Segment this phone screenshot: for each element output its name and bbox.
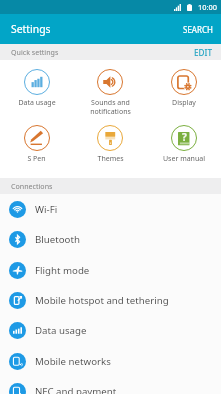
staticText: User manual bbox=[163, 154, 205, 164]
staticText: Sounds and notifications bbox=[90, 98, 131, 116]
staticText: Bluetooth bbox=[35, 233, 80, 246]
staticText: EDIT bbox=[194, 47, 213, 57]
staticText: SEARCH bbox=[183, 24, 213, 35]
button[interactable]: Display bbox=[147, 60, 221, 116]
button[interactable]: Bluetooth bbox=[0, 224, 221, 255]
button[interactable]: Mobile networks bbox=[0, 346, 221, 376]
staticText: Themes bbox=[97, 154, 124, 164]
staticText: Mobile networks bbox=[35, 355, 111, 368]
staticText: Display bbox=[172, 98, 196, 108]
button[interactable]: ? bbox=[147, 116, 221, 172]
staticText: Quick settings bbox=[11, 47, 59, 57]
staticText: Wi-Fi bbox=[35, 203, 58, 216]
staticText: ? bbox=[182, 130, 187, 144]
staticText: Data usage bbox=[35, 324, 87, 337]
staticText: Mobile hotspot and tethering bbox=[35, 294, 169, 307]
staticText: 10:00 bbox=[198, 2, 217, 12]
staticText: S Pen bbox=[27, 154, 46, 164]
button[interactable]: SEARCH bbox=[175, 17, 221, 42]
staticText: NFC and payment bbox=[35, 385, 117, 394]
button[interactable]: Flight mode bbox=[0, 255, 221, 285]
button[interactable]: Data usage bbox=[0, 315, 221, 346]
button[interactable]: Mobile hotspot and tethering bbox=[0, 285, 221, 315]
staticText: Data usage bbox=[18, 98, 56, 108]
staticText: Settings bbox=[11, 22, 51, 36]
staticText: Flight mode bbox=[35, 264, 90, 277]
button[interactable]: Wi-Fi bbox=[0, 194, 221, 224]
button[interactable]: Themes bbox=[73, 116, 147, 172]
button[interactable]: Data usage bbox=[0, 60, 73, 116]
button[interactable]: NFC and payment bbox=[0, 376, 221, 394]
button[interactable]: Sounds and notifications bbox=[73, 60, 147, 116]
staticText: Connections bbox=[11, 181, 53, 191]
button[interactable]: S Pen bbox=[0, 116, 73, 172]
button[interactable]: EDIT bbox=[186, 44, 221, 60]
